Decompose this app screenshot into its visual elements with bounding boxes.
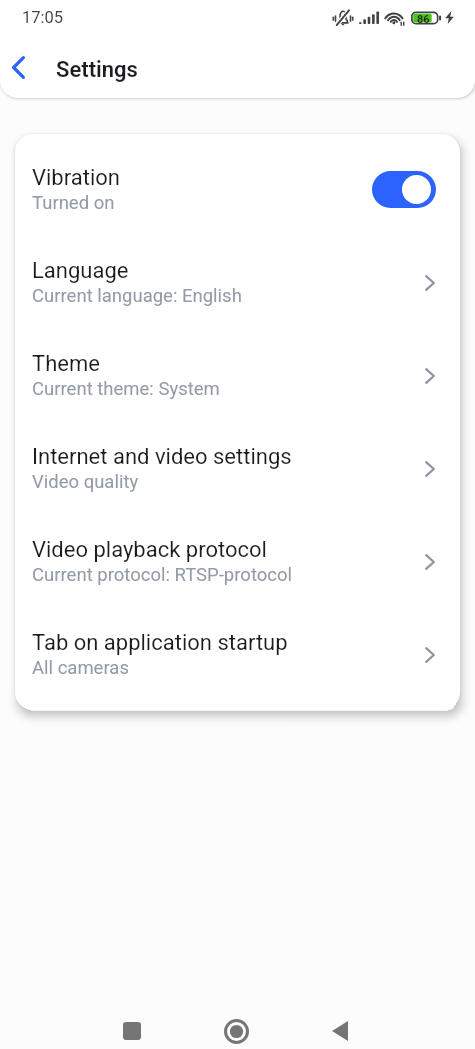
button[interactable]: Back (0, 46, 39, 88)
staticText: Video quality (32, 471, 139, 493)
button[interactable]: Video playback protocol (15, 515, 460, 608)
staticText: Current language: English (32, 285, 242, 307)
staticText: 17:05 (22, 8, 64, 27)
button[interactable]: Theme (15, 329, 460, 422)
button[interactable]: Vibration toggle (372, 171, 436, 208)
staticText: Settings (56, 57, 138, 83)
staticText: 86 (417, 13, 430, 26)
button[interactable]: Tab on application startup (15, 608, 460, 701)
staticText: Tab on application startup (32, 630, 288, 656)
button[interactable]: Back (288, 1013, 392, 1049)
button[interactable]: Internet and video settings (15, 422, 460, 515)
button[interactable]: Recent apps (80, 1013, 184, 1049)
staticText: Theme (32, 351, 100, 377)
button[interactable]: Home (184, 1013, 288, 1049)
staticText: Current theme: System (32, 378, 220, 400)
staticText: Turned on (32, 192, 115, 214)
staticText: All cameras (32, 657, 129, 679)
staticText: Internet and video settings (32, 444, 292, 470)
staticText: Current protocol: RTSP-protocol (32, 564, 293, 586)
staticText: Vibration (32, 165, 120, 191)
button[interactable]: Language (15, 236, 460, 329)
staticText: Video playback protocol (32, 537, 267, 563)
staticText: Language (32, 258, 129, 284)
button[interactable]: Vibration (15, 143, 460, 236)
